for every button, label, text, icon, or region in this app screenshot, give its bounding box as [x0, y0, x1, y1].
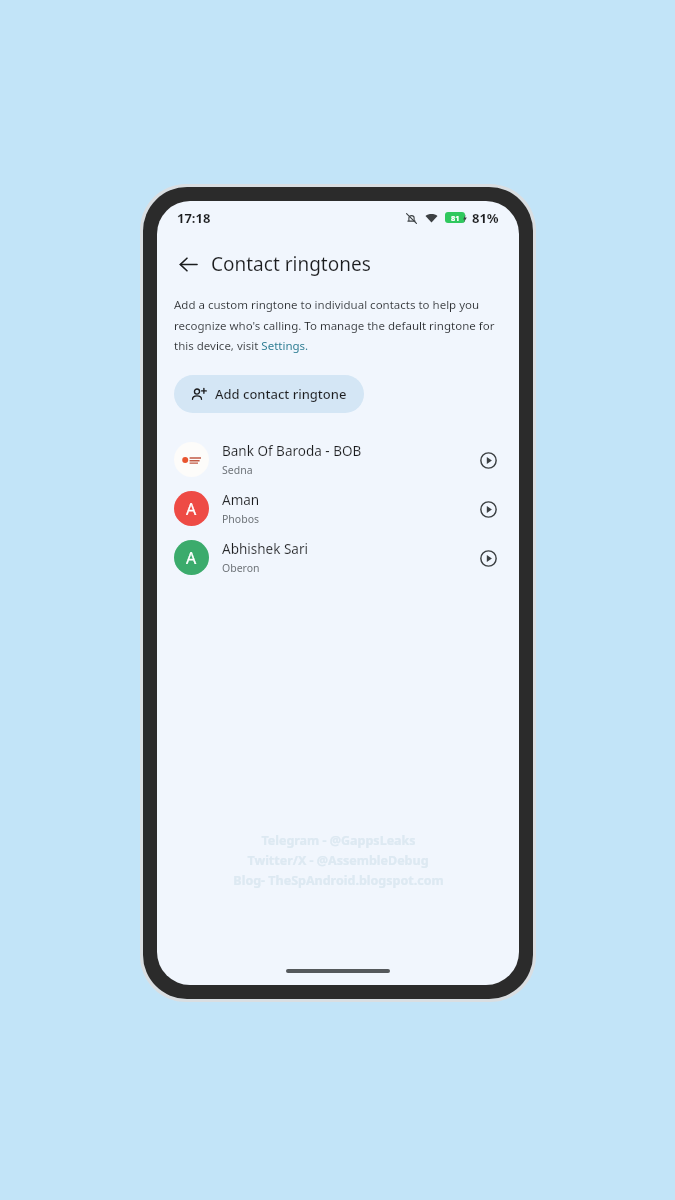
staticText: A	[186, 498, 197, 520]
staticText: 81	[451, 213, 460, 223]
staticText: Phobos	[222, 512, 260, 526]
button[interactable]: Back	[171, 247, 205, 281]
button[interactable]: Bank Of Baroda - BOB	[157, 435, 519, 484]
staticText: Abhishek Sari	[222, 540, 308, 558]
staticText: Bank Of Baroda - BOB	[222, 442, 362, 460]
staticText: A	[186, 547, 197, 569]
staticText: Oberon	[222, 561, 260, 575]
button[interactable]: Play Oberon	[471, 541, 505, 575]
button[interactable]: A	[157, 533, 519, 582]
staticText: Sedna	[222, 463, 253, 477]
button[interactable]: Play Sedna	[471, 443, 505, 477]
staticText: Contact ringtones	[211, 251, 371, 277]
button[interactable]: Add contact ringtone	[174, 375, 364, 413]
button[interactable]: Play Phobos	[471, 492, 505, 526]
staticText: Twitter/X - @AssembleDebug	[247, 852, 429, 869]
staticText: Telegram - @GappsLeaks	[261, 832, 416, 849]
staticText: Add a custom ringtone to individual cont…	[174, 297, 502, 353]
staticText: Blog- TheSpAndroid.blogspot.com	[233, 872, 444, 889]
staticText: 17:18	[177, 209, 211, 227]
staticText: 81%	[472, 209, 499, 227]
staticText: Add contact ringtone	[215, 385, 347, 403]
button[interactable]: A	[157, 484, 519, 533]
staticText: Aman	[222, 491, 260, 509]
